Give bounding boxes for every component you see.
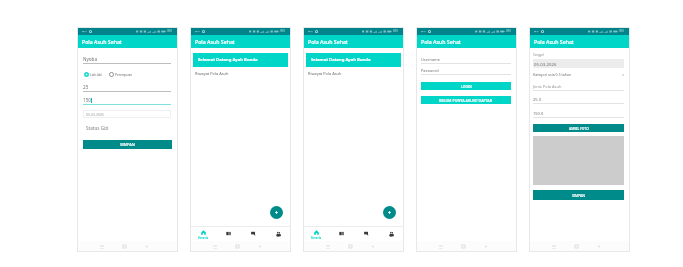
staticText: 98% (393, 29, 399, 33)
other: Back (597, 245, 600, 248)
staticText: 150 (83, 97, 91, 103)
staticText: Kategori usia 0-5 tahun (533, 72, 572, 77)
other: Home (123, 245, 126, 248)
staticText: Pola Asuh Sehat (195, 38, 235, 45)
button[interactable]: Laki-laki (84, 72, 102, 77)
button[interactable]: Nyoba (83, 56, 171, 64)
button[interactable]: Kategori usia 0-5 tahun (533, 72, 624, 77)
button[interactable]: 25 (83, 84, 171, 92)
other: Home (462, 245, 465, 248)
button[interactable]: Artikel (329, 227, 354, 241)
button[interactable]: SIMPAN (533, 190, 624, 200)
staticText: Jenis Pola Asuh (533, 84, 562, 89)
staticText: Tanggal (533, 53, 544, 57)
staticText: Password (421, 68, 439, 73)
button[interactable]: Beranda (190, 227, 216, 241)
staticText: SIMPAN (120, 142, 135, 147)
staticText: Selamat Datang Ayah Bunda (198, 57, 258, 63)
button[interactable]: Selamat Datang Ayah Bunda (193, 53, 288, 67)
staticText: 05-03-2026 (534, 61, 557, 67)
button[interactable]: Password (421, 68, 511, 75)
staticText: 25.0 (533, 97, 541, 102)
other: Back (145, 245, 148, 248)
staticText: Nyoba (83, 56, 98, 62)
staticText: Beranda (198, 236, 209, 240)
button[interactable]: Tambah (383, 206, 396, 219)
other: Recents (552, 245, 556, 249)
other: Back (484, 245, 487, 248)
staticText: 150.0 (533, 111, 544, 116)
other: Home (236, 245, 239, 248)
staticText: 98% (619, 29, 625, 33)
staticText: Pola Asuh Sehat (82, 38, 122, 45)
staticText: 25 (83, 84, 89, 90)
staticText: BELUM PUNYA AKUN? DAFTAR (439, 98, 493, 103)
button[interactable]: AMBIL FOTO (533, 124, 624, 132)
staticText: Selamat Datang Ayah Bunda (311, 57, 371, 63)
button[interactable]: Konsultasi (354, 227, 379, 241)
button[interactable]: 05-03-2026 (533, 59, 624, 68)
button[interactable]: Artikel (216, 227, 241, 241)
other: Recents (100, 245, 104, 249)
other: Back (371, 245, 374, 248)
staticText: 98% (280, 29, 286, 33)
button[interactable]: 25.0 (533, 97, 624, 104)
other: Home (575, 245, 578, 248)
staticText: Beranda (311, 236, 322, 240)
button[interactable]: 150 (83, 97, 171, 105)
button[interactable]: Username (421, 57, 511, 64)
button[interactable]: Konsultasi (241, 227, 266, 241)
staticText: Username (421, 57, 440, 62)
button[interactable]: Selamat Datang Ayah Bunda (306, 53, 401, 67)
staticText: 05-03-2026 (86, 112, 104, 117)
staticText: SIMPAN (572, 193, 585, 198)
button[interactable]: Perempuan (109, 72, 133, 77)
staticText: AMBIL FOTO (569, 126, 589, 130)
staticText: Status Gizi (86, 125, 109, 131)
other: Recents (439, 245, 443, 249)
staticText: 98% (506, 29, 512, 33)
other: Recents (326, 245, 330, 249)
button[interactable]: 150.0 (533, 111, 624, 118)
staticText: Laki-laki (90, 73, 102, 77)
button[interactable]: LOGIN (421, 82, 511, 90)
button[interactable]: Jenis Pola Asuh (533, 84, 624, 91)
button[interactable]: 05-03-2026 (86, 110, 171, 118)
staticText: Perempuan (115, 73, 133, 77)
other: Back (258, 245, 261, 248)
staticText: 98% (167, 29, 173, 33)
staticText: Pola Asuh Sehat (534, 38, 574, 45)
button[interactable]: Profil (379, 227, 404, 241)
staticText: Riwayat Pola Asuh (195, 71, 229, 76)
staticText: LOGIN (461, 84, 472, 89)
button[interactable]: SIMPAN (83, 140, 172, 149)
staticText: Riwayat Pola Asuh (308, 71, 342, 76)
button[interactable]: Tambah (270, 206, 283, 219)
staticText: Pola Asuh Sehat (421, 38, 461, 45)
other: Recents (213, 245, 217, 249)
button[interactable]: Profil (266, 227, 291, 241)
button[interactable]: BELUM PUNYA AKUN? DAFTAR (421, 96, 511, 104)
staticText: Pola Asuh Sehat (308, 38, 348, 45)
button[interactable]: Beranda (303, 227, 329, 241)
other: Home (349, 245, 352, 248)
